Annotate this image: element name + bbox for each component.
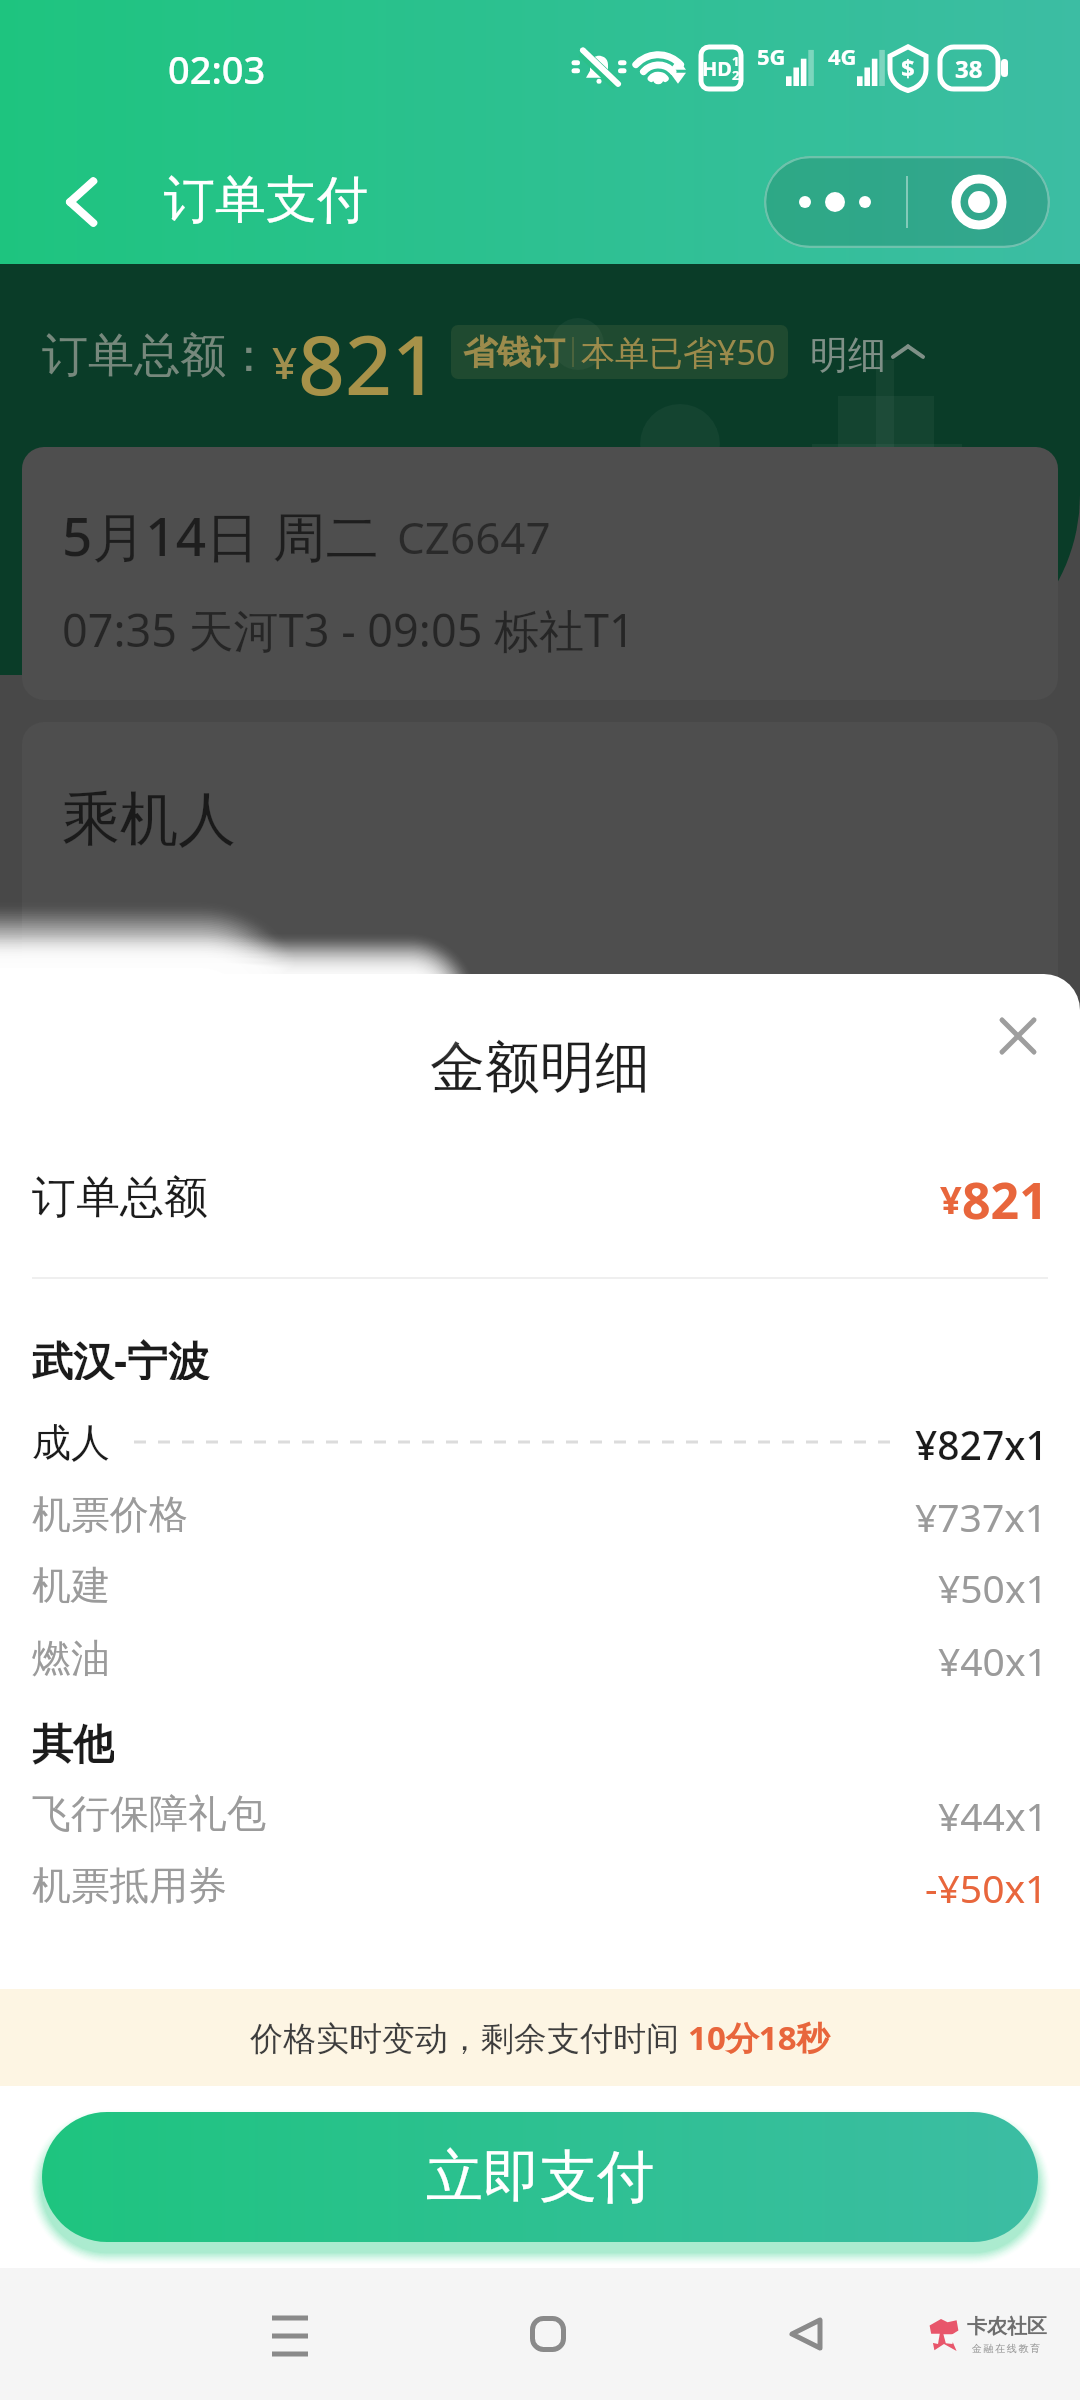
staticText: 机票价格 [32, 1490, 188, 1538]
staticText: 2 [732, 66, 740, 84]
staticText: 明细 [810, 331, 886, 379]
staticText: 省钱订 [463, 331, 565, 374]
button[interactable]: Back [764, 2292, 848, 2376]
staticText: 10分18秒 [688, 2015, 830, 2060]
button[interactable]: Home [506, 2292, 590, 2376]
staticText: 订单总额 [32, 1170, 208, 1225]
button[interactable]: 省钱订 [463, 325, 776, 379]
staticText: 38 [955, 52, 983, 85]
staticText: 本单已省¥50 [581, 329, 776, 375]
staticText: 其他 [32, 1719, 114, 1767]
button[interactable]: Back [30, 148, 138, 256]
staticText: ¥ [940, 1173, 962, 1225]
staticText: 5月14日 周二 [62, 499, 379, 571]
staticText: 订单支付 [164, 168, 368, 232]
staticText: 飞行保障礼包 [32, 1789, 266, 1837]
staticText: 5G [757, 41, 786, 71]
staticText: 乘机人 [62, 783, 236, 856]
staticText: 机票抵用券 [32, 1861, 227, 1909]
staticText: ¥50x1 [938, 1561, 1048, 1609]
staticText: 821 [298, 307, 439, 399]
staticText: -¥50x1 [925, 1861, 1048, 1909]
staticText: 金融在线教育 [972, 2342, 1042, 2355]
staticText: ¥44x1 [938, 1789, 1048, 1837]
staticText: ¥ [272, 332, 298, 392]
staticText: ¥40x1 [938, 1634, 1048, 1682]
staticText: 成人 [32, 1418, 110, 1466]
staticText: 07:35 天河T3 - 09:05 栎社T1 [62, 599, 635, 660]
button[interactable]: 立即支付 [42, 2112, 1038, 2242]
staticText: 机建 [32, 1561, 110, 1609]
staticText: 价格实时变动，剩余支付时间 [250, 2015, 688, 2060]
button[interactable]: Recent apps [248, 2292, 332, 2376]
button[interactable]: 明细 [810, 328, 923, 376]
button[interactable]: More options [764, 156, 1050, 248]
staticText: HD [702, 55, 732, 82]
staticText: 金额明细 [430, 1033, 650, 1102]
staticText: 订单总额： [42, 327, 272, 385]
staticText: 武汉-宁波 [32, 1332, 210, 1380]
staticText: 821 [962, 1166, 1048, 1228]
button[interactable]: Close [977, 995, 1059, 1077]
staticText: ¥827x1 [915, 1418, 1048, 1466]
staticText: 卡农社区 [967, 2314, 1047, 2339]
staticText: 4G [828, 41, 857, 71]
staticText: CZ6647 [397, 507, 551, 567]
staticText: 立即支付 [426, 2141, 654, 2213]
staticText: 02:03 [168, 43, 266, 95]
staticText: ¥737x1 [915, 1490, 1048, 1538]
staticText: $ [901, 51, 915, 84]
staticText: 燃油 [32, 1634, 110, 1682]
staticText: 1 [732, 52, 740, 70]
